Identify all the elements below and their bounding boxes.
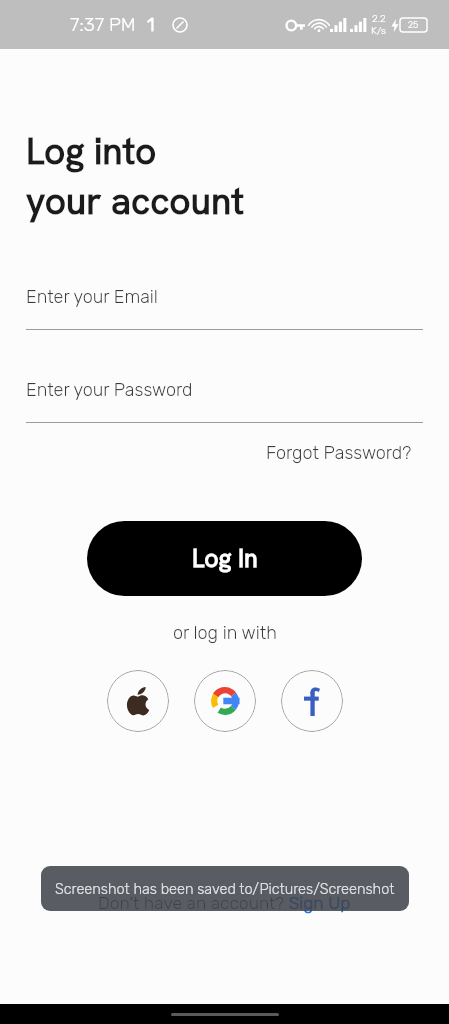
button[interactable]: Sign in with Apple <box>107 670 169 732</box>
staticText: Screenshot has been saved to/Pictures/Sc… <box>55 880 395 897</box>
staticText: or log in with <box>173 622 277 643</box>
button[interactable]: Log In <box>87 521 362 596</box>
staticText: Log into your account <box>26 127 244 226</box>
button[interactable]: Forgot Password? <box>266 442 423 463</box>
staticText: 25 <box>408 20 419 31</box>
staticText: 1 <box>147 13 155 36</box>
staticText: 2.2 <box>372 13 386 25</box>
staticText: Enter your Email <box>26 286 158 307</box>
button[interactable]: Sign in with Google <box>194 670 256 732</box>
button[interactable]: Don't have an account? Sign Up <box>98 893 351 914</box>
staticText: 7:37 PM <box>70 13 136 36</box>
staticText: Enter your Password <box>26 379 193 400</box>
staticText: K/s <box>371 25 386 37</box>
staticText: Log In <box>192 542 258 575</box>
button[interactable]: Sign in with Facebook <box>281 670 343 732</box>
